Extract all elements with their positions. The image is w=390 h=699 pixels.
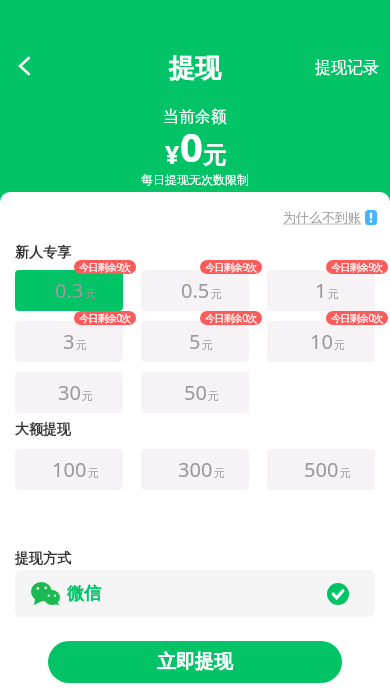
button[interactable]: 100 (15, 449, 123, 490)
button[interactable]: 500 (267, 449, 375, 490)
staticText: 0.3 (55, 277, 84, 304)
staticText: 500 (304, 456, 339, 483)
staticText: 当前余额 (163, 107, 227, 127)
staticText: ¥ (165, 137, 180, 171)
staticText: 今日剩余9次 (205, 260, 257, 274)
staticText: 大额提现 (15, 421, 71, 439)
staticText: 1 (315, 277, 327, 304)
staticText: 300 (178, 456, 213, 483)
staticText: 元 (208, 389, 219, 403)
button[interactable]: 0.5 (141, 270, 249, 311)
staticText: 元 (211, 287, 222, 301)
staticText: 每日提现无次数限制 (141, 172, 249, 187)
staticText: 今日剩余9次 (79, 260, 131, 274)
staticText: 为什么不到账 (283, 209, 361, 225)
staticText: 0.5 (181, 277, 210, 304)
staticText: 元 (85, 287, 96, 301)
button[interactable]: 提现记录 (304, 54, 390, 82)
staticText: 0 (180, 119, 203, 173)
staticText: 提现 (169, 52, 221, 85)
button[interactable]: 为什么不到账 (283, 209, 377, 225)
staticText: 元 (76, 338, 87, 352)
staticText: 今日剩余9次 (331, 260, 383, 274)
staticText: 微信 (67, 583, 101, 604)
staticText: 提现记录 (315, 58, 379, 78)
staticText: 元 (328, 287, 339, 301)
staticText: 今日剩余0次 (205, 311, 257, 325)
button[interactable]: 50 (141, 372, 249, 413)
staticText: 元 (203, 141, 226, 170)
staticText: 50 (184, 379, 207, 406)
staticText: 今日剩余0次 (331, 311, 383, 325)
button[interactable]: 300 (141, 449, 249, 490)
staticText: 立即提现 (157, 650, 233, 674)
staticText: 元 (340, 466, 351, 480)
button[interactable]: 0.3 (15, 270, 123, 311)
staticText: 元 (88, 466, 99, 480)
button[interactable]: 1 (267, 270, 375, 311)
staticText: 今日剩余0次 (79, 311, 131, 325)
staticText: 10 (310, 328, 333, 355)
staticText: 元 (214, 466, 225, 480)
staticText: 元 (82, 389, 93, 403)
staticText: 100 (52, 456, 87, 483)
staticText: 元 (334, 338, 345, 352)
staticText: 新人专享 (15, 244, 71, 262)
button[interactable]: 30 (15, 372, 123, 413)
button[interactable]: 3 (15, 321, 123, 362)
staticText: 3 (63, 328, 75, 355)
staticText: 5 (189, 328, 201, 355)
staticText: 提现方式 (15, 550, 71, 568)
staticText: 元 (202, 338, 213, 352)
button[interactable]: 微信 (15, 570, 375, 617)
button[interactable]: 10 (267, 321, 375, 362)
button[interactable]: 立即提现 (48, 641, 342, 683)
staticText: 30 (58, 379, 81, 406)
button[interactable]: Back (8, 46, 48, 86)
button[interactable]: 5 (141, 321, 249, 362)
